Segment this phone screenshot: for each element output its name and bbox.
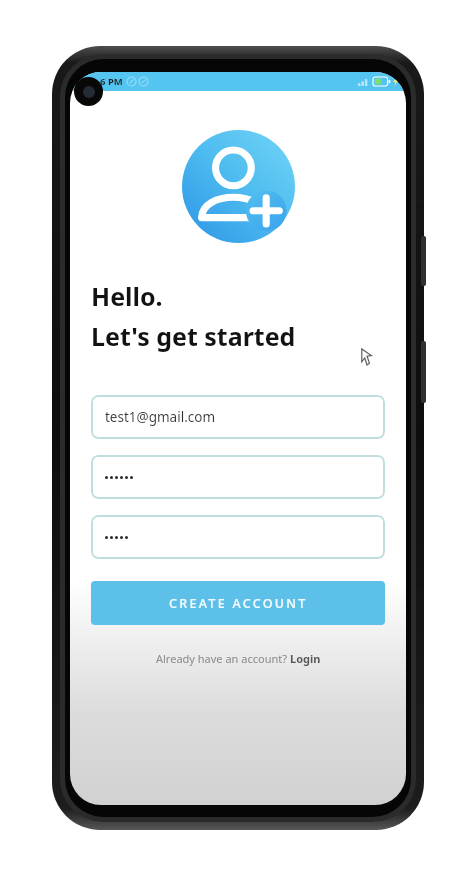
other: Add account avatar — [182, 130, 295, 243]
staticText: Let's get started — [91, 319, 296, 353]
button[interactable]: CREATE ACCOUNT — [91, 581, 385, 625]
staticText: Hello. — [91, 279, 163, 313]
button[interactable] — [91, 455, 385, 499]
staticText: 6 PM — [100, 75, 123, 88]
button[interactable]: Already have an account? — [91, 651, 385, 666]
button[interactable]: test1@gmail.com — [91, 395, 385, 439]
button[interactable] — [91, 515, 385, 559]
staticText: Login — [290, 651, 321, 666]
staticText: test1@gmail.com — [105, 408, 216, 426]
staticText: Already have an account? — [156, 651, 290, 666]
staticText: CREATE ACCOUNT — [169, 595, 308, 612]
